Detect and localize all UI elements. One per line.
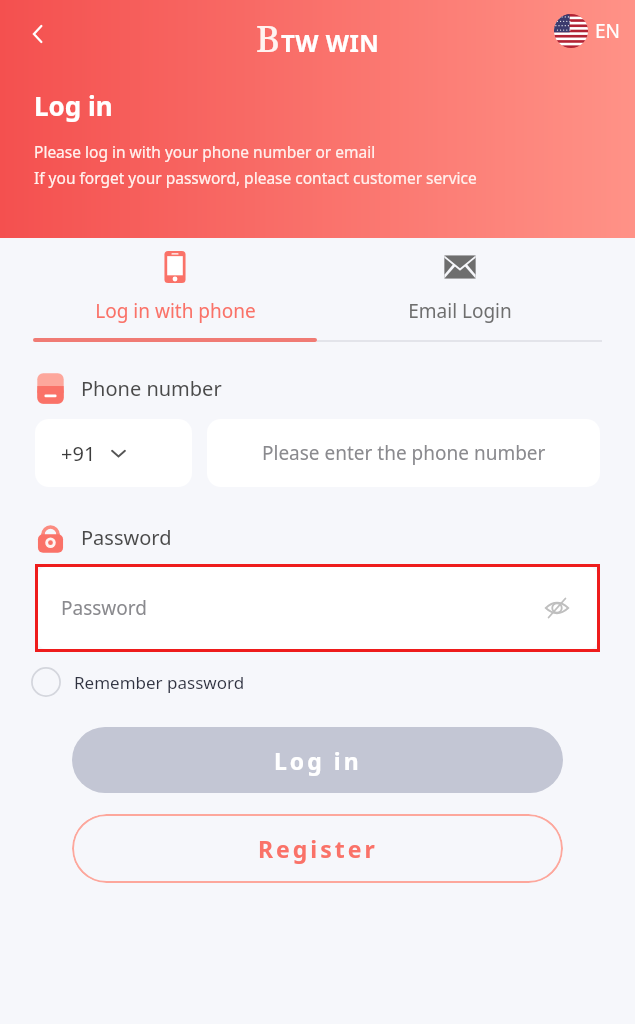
button[interactable]: Log in <box>72 727 563 793</box>
staticText: Phone number <box>81 375 222 402</box>
staticText: +91 <box>61 440 96 467</box>
staticText: Log in <box>274 745 362 776</box>
staticText: Remember password <box>74 671 245 694</box>
staticText: EN <box>595 18 621 44</box>
staticText: Log in <box>34 88 113 123</box>
staticText: Please enter the phone number <box>262 440 546 466</box>
staticText: Password <box>61 595 147 621</box>
button[interactable]: +91 <box>35 419 192 487</box>
staticText: If you forget your password, please cont… <box>34 167 477 188</box>
button[interactable]: Register <box>72 814 563 883</box>
button[interactable]: Language English <box>554 14 621 48</box>
staticText: Email Login <box>408 298 512 324</box>
button[interactable]: Remember password <box>30 666 245 698</box>
button[interactable]: Please enter the phone number <box>207 419 600 487</box>
button[interactable]: Password <box>38 567 597 649</box>
other: Language English <box>554 14 588 48</box>
staticText: Please log in with your phone number or … <box>34 141 376 162</box>
button[interactable]: Email Login <box>317 250 602 324</box>
staticText: Password <box>81 524 172 551</box>
button[interactable]: Show password <box>537 588 577 628</box>
staticText: B <box>256 14 280 63</box>
staticText: Register <box>258 833 378 864</box>
staticText: Log in with phone <box>95 298 256 324</box>
staticText: TW WIN <box>281 26 380 59</box>
button[interactable]: Log in with phone <box>33 250 317 324</box>
button[interactable]: Back <box>16 12 60 56</box>
